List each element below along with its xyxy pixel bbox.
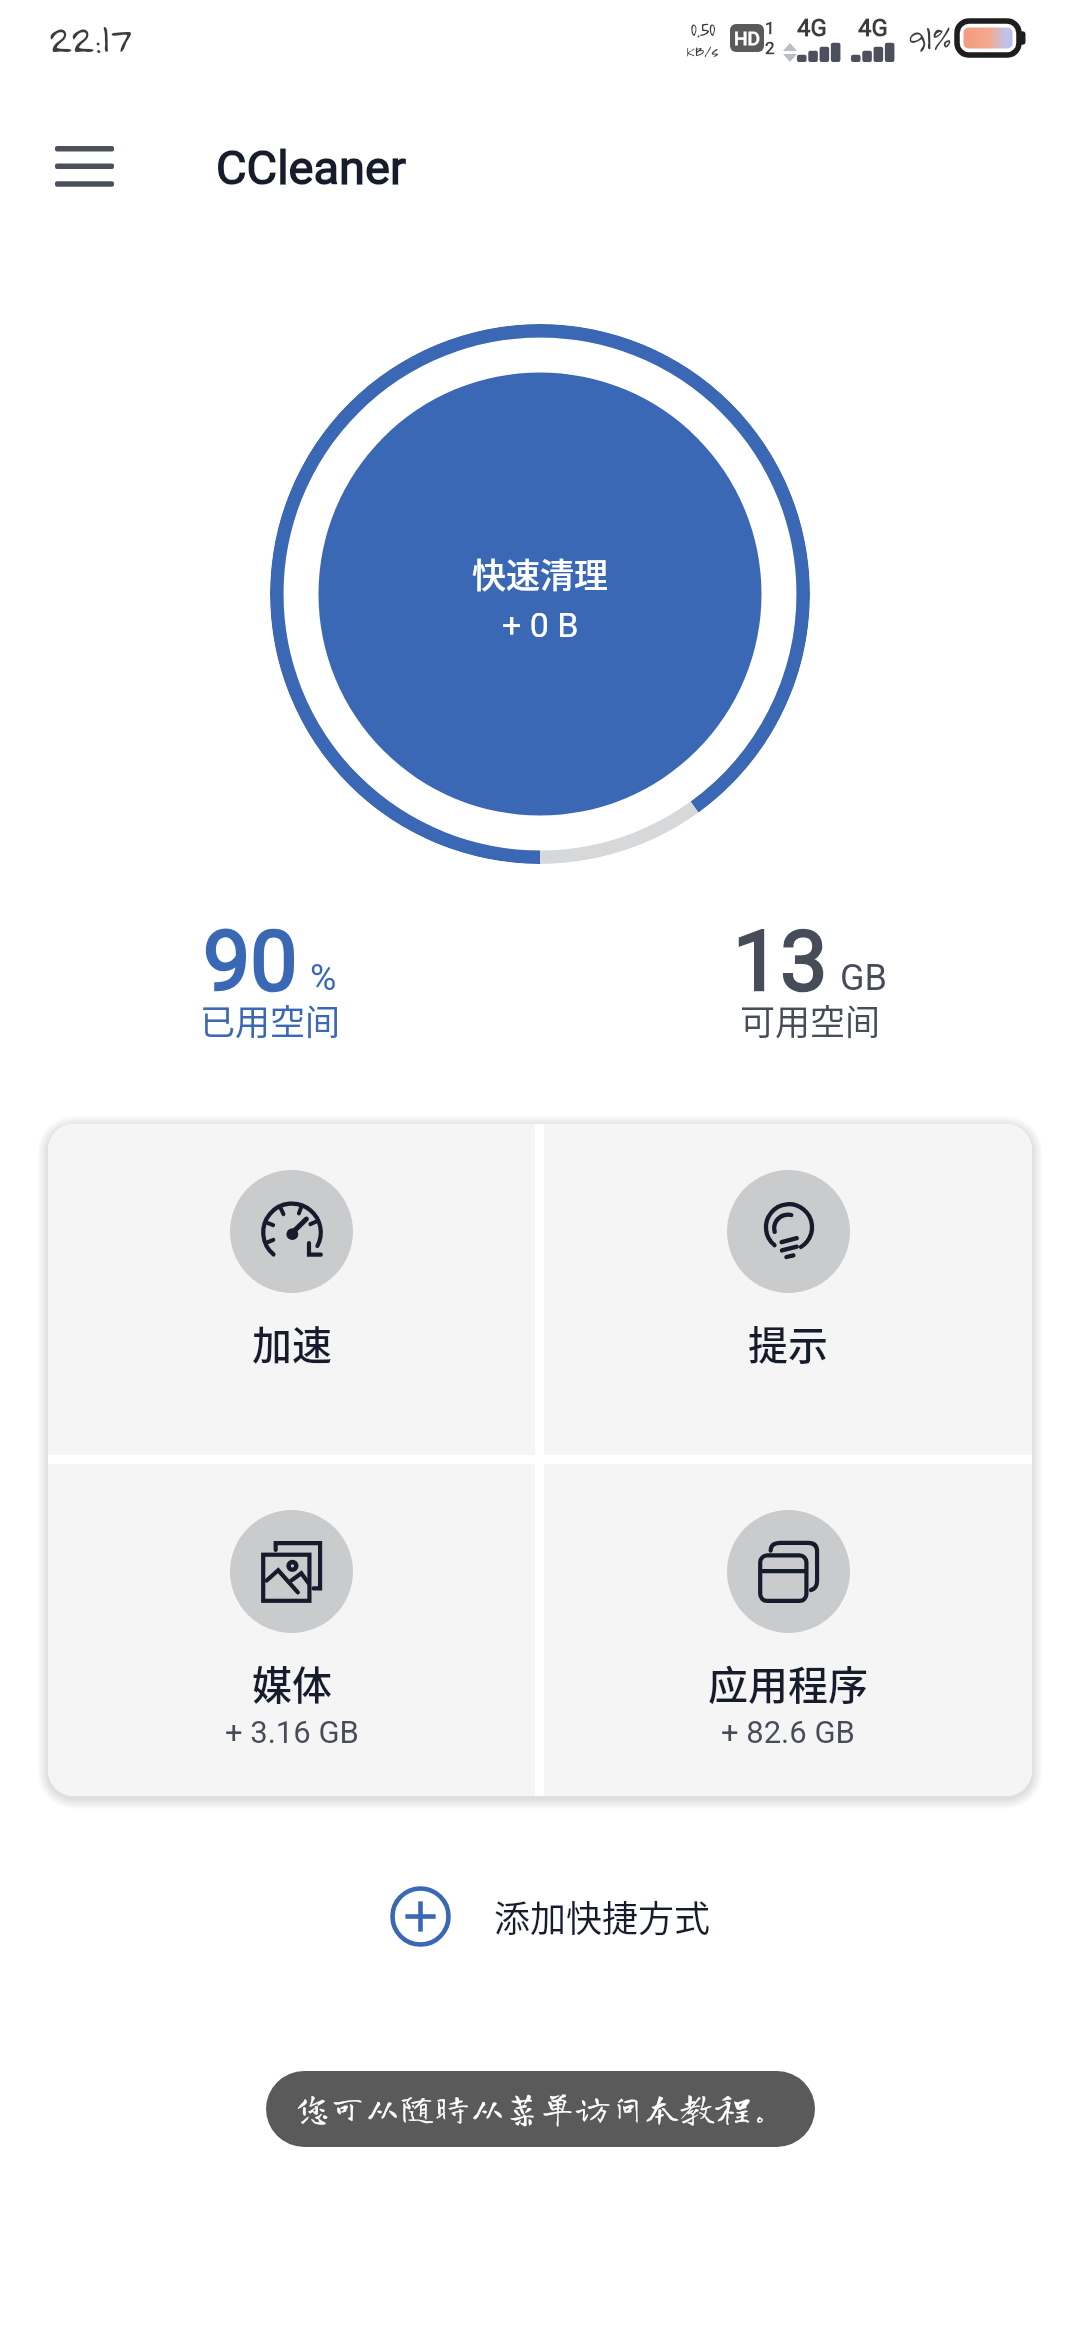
staticText: + 3.16 GB <box>225 1714 359 1750</box>
button[interactable]: 添加快捷方式 <box>390 1866 711 1966</box>
staticText: 可用空间 <box>740 994 881 1045</box>
button[interactable]: Boost <box>48 1124 535 1455</box>
staticText: 4G <box>858 14 888 42</box>
staticText: GB <box>840 957 887 999</box>
button[interactable]: Apps <box>544 1464 1032 1796</box>
button[interactable]: Tips <box>544 1124 1032 1455</box>
staticText: % <box>310 957 337 999</box>
staticText: 加速 <box>252 1314 332 1372</box>
staticText: + 0 B <box>502 605 579 645</box>
staticText: CCleaner <box>216 140 406 195</box>
staticText: 您可从随时从菜单访问本教程。 <box>295 2090 786 2125</box>
staticText: 提示 <box>748 1314 828 1372</box>
staticText: 13 <box>733 912 828 1010</box>
staticText: 媒体 <box>252 1654 332 1712</box>
button[interactable]: Quick clean <box>270 324 810 864</box>
staticText: 已用空间 <box>200 994 341 1045</box>
staticText: 4G <box>797 14 827 42</box>
staticText: 1 <box>765 18 775 38</box>
staticText: 90 <box>203 912 298 1010</box>
staticText: 2 <box>765 38 775 58</box>
staticText: HD <box>734 27 761 49</box>
staticText: 22:17 <box>48 14 130 62</box>
staticText: + 82.6 GB <box>721 1714 855 1750</box>
staticText: 0.50 <box>690 17 715 41</box>
button[interactable]: Menu <box>42 124 126 208</box>
staticText: 添加快捷方式 <box>494 1890 711 1942</box>
staticText: 应用程序 <box>708 1654 868 1712</box>
button[interactable]: Media <box>48 1464 535 1796</box>
staticText: 91% <box>907 18 951 58</box>
staticText: 快速清理 <box>472 549 608 598</box>
staticText: KB/s <box>686 41 718 60</box>
